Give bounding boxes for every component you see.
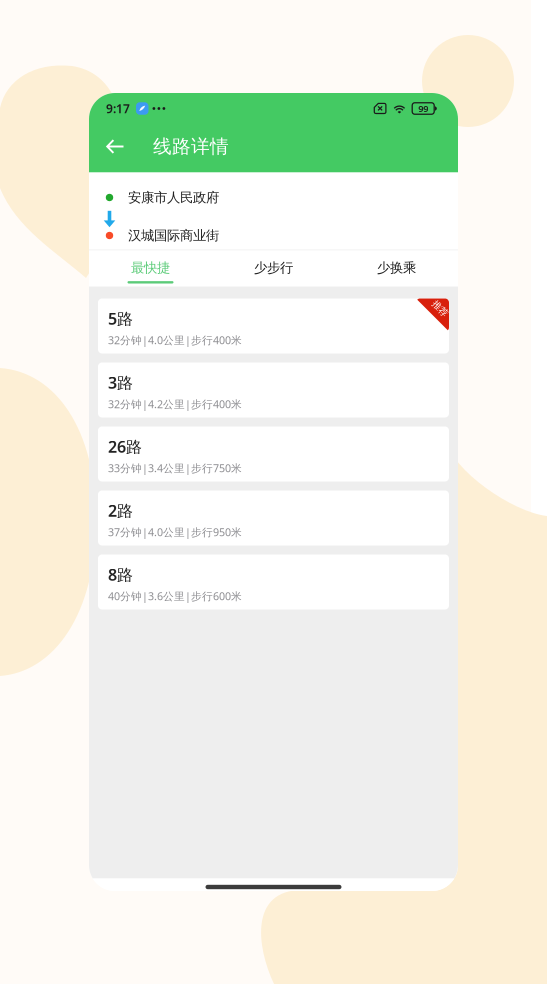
button[interactable]: 少步行 bbox=[212, 250, 335, 286]
staticText: 37分钟|4.0公里|步行950米 bbox=[108, 525, 242, 539]
button[interactable]: 26路 bbox=[98, 426, 449, 481]
button[interactable]: 2路 bbox=[98, 490, 449, 545]
staticText: 少换乘 bbox=[377, 260, 416, 276]
staticText: 少步行 bbox=[254, 260, 293, 276]
staticText: 32分钟|4.2公里|步行400米 bbox=[108, 397, 242, 411]
staticText: 推荐 bbox=[431, 303, 449, 314]
staticText: 汉城国际商业街 bbox=[128, 227, 219, 244]
button[interactable]: 5路 bbox=[98, 298, 449, 353]
staticText: 最快捷 bbox=[131, 260, 170, 276]
button[interactable]: 少换乘 bbox=[335, 250, 458, 286]
staticText: 33分钟|3.4公里|步行750米 bbox=[108, 461, 242, 475]
staticText: 26路 bbox=[108, 436, 142, 457]
button[interactable]: Back bbox=[98, 126, 133, 166]
staticText: 5路 bbox=[108, 308, 133, 329]
button[interactable]: 8路 bbox=[98, 554, 449, 609]
staticText: 安康市人民政府 bbox=[128, 189, 219, 206]
staticText: 99 bbox=[418, 102, 428, 115]
button[interactable]: 最快捷 bbox=[89, 250, 212, 286]
button[interactable]: 3路 bbox=[98, 362, 449, 417]
staticText: 40分钟|3.6公里|步行600米 bbox=[108, 589, 242, 603]
staticText: 32分钟|4.0公里|步行400米 bbox=[108, 333, 242, 347]
staticText: 线路详情 bbox=[153, 135, 229, 158]
staticText: 3路 bbox=[108, 372, 133, 393]
staticText: 8路 bbox=[108, 564, 133, 585]
staticText: 9:17 bbox=[106, 100, 130, 116]
staticText: 2路 bbox=[108, 500, 133, 521]
